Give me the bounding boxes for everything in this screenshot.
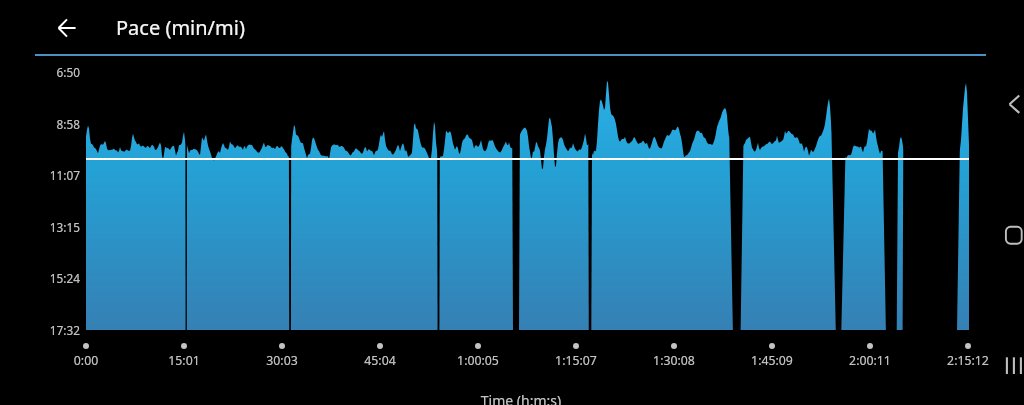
staticText: 2:00:11 — [825, 352, 915, 369]
staticText: 45:04 — [335, 352, 425, 369]
staticText: 6:50 — [20, 64, 80, 80]
staticText: 1:45:09 — [727, 352, 817, 369]
staticText: 8:58 — [20, 116, 80, 132]
button[interactable]: Back — [47, 8, 87, 48]
staticText: 15:24 — [20, 270, 80, 286]
staticText: 1:15:07 — [531, 352, 621, 369]
button[interactable]: Back — [1002, 92, 1024, 116]
staticText: Pace (min/mi) — [116, 14, 245, 41]
staticText: 30:03 — [237, 352, 327, 369]
staticText: 1:30:08 — [629, 352, 719, 369]
staticText: Time (h:m:s) — [421, 391, 621, 405]
staticText: 2:15:12 — [923, 352, 1013, 369]
staticText: 0:00 — [41, 352, 131, 369]
staticText: 13:15 — [20, 219, 80, 235]
button[interactable]: Recent apps — [1002, 354, 1024, 378]
button[interactable]: Home — [1002, 223, 1024, 247]
staticText: 17:32 — [20, 322, 80, 338]
staticText: 11:07 — [20, 167, 80, 183]
staticText: 1:00:05 — [433, 352, 523, 369]
staticText: 15:01 — [139, 352, 229, 369]
